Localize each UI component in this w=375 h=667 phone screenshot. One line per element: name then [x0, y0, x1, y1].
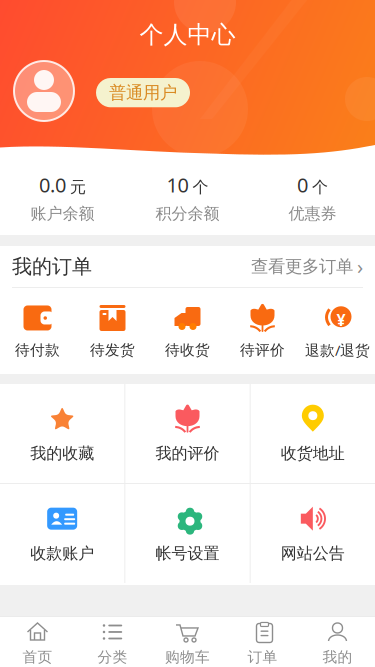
staticText: 我的 — [322, 648, 352, 666]
staticText: 10 — [166, 171, 188, 198]
button[interactable]: 我的评价 — [125, 386, 250, 481]
staticText: 积分余额 — [155, 204, 219, 224]
staticText: 收货地址 — [281, 444, 345, 463]
staticText: 个 — [312, 177, 328, 197]
staticText: 待评价 — [240, 341, 285, 359]
staticText: 个 — [192, 177, 208, 197]
staticText: 帐号设置 — [155, 544, 219, 563]
button[interactable]: 我的 — [300, 613, 375, 667]
staticText: 普通用户 — [109, 82, 177, 103]
staticText: 账户余额 — [30, 204, 94, 224]
staticText: 0 — [297, 171, 308, 198]
staticText: 首页 — [22, 648, 52, 666]
button[interactable]: 网站公告 — [251, 486, 375, 581]
button[interactable]: ¥ — [300, 288, 375, 374]
staticText: 待收货 — [165, 341, 210, 359]
button[interactable]: 待发货 — [75, 289, 150, 373]
button[interactable]: 购物车 — [150, 613, 225, 667]
button[interactable]: 收货地址 — [251, 386, 375, 481]
staticText: 元 — [70, 177, 86, 197]
staticText: 订单 — [247, 648, 277, 666]
staticText: ¥ — [336, 309, 345, 330]
staticText: 查看更多订单 — [251, 256, 353, 277]
staticText: 购物车 — [165, 648, 210, 666]
staticText: 我的订单 — [12, 254, 92, 279]
staticText: 我的收藏 — [30, 444, 94, 463]
staticText: 分类 — [97, 648, 127, 666]
staticText: 优惠券 — [288, 204, 336, 224]
button[interactable]: 我的收藏 — [0, 386, 124, 481]
staticText: 待发货 — [90, 341, 135, 359]
staticText: › — [357, 253, 363, 280]
staticText: 退款/退货 — [305, 340, 370, 360]
button[interactable]: 普通用户 — [96, 78, 190, 107]
button[interactable]: 待付款 — [0, 289, 75, 373]
staticText: 网站公告 — [281, 544, 345, 563]
staticText: 个人中心 — [139, 20, 235, 49]
staticText: 我的评价 — [155, 444, 219, 463]
staticText: 0.0 — [39, 171, 66, 198]
button[interactable]: 待评价 — [225, 289, 300, 373]
button[interactable]: 首页 — [0, 613, 75, 667]
button[interactable]: 查看更多订单 — [251, 253, 363, 280]
staticText: 收款账户 — [30, 544, 94, 563]
button[interactable]: 分类 — [75, 613, 150, 667]
staticText: 待付款 — [15, 341, 60, 359]
button[interactable]: 帐号设置 — [125, 486, 250, 581]
button[interactable]: 收款账户 — [0, 486, 124, 581]
button[interactable]: 待收货 — [150, 289, 225, 373]
button[interactable]: 订单 — [225, 613, 300, 667]
